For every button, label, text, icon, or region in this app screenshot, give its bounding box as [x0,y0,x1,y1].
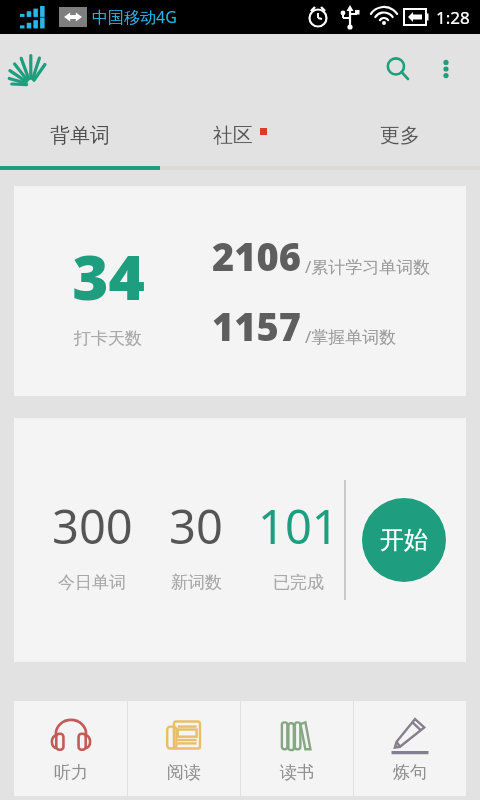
button[interactable]: 阅读 [128,701,240,796]
staticText: 读书 [280,762,314,783]
button[interactable]: 听力 [14,701,127,796]
button[interactable]: 炼句 [354,701,466,796]
staticText: 34 [72,234,145,318]
staticText: 30 [169,494,223,558]
staticText: 已完成 [273,572,324,593]
staticText: 开始 [380,525,428,555]
staticText: 1157 [212,300,302,352]
staticText: 300 [52,494,133,558]
staticText: 听力 [54,762,88,783]
staticText: 101 [258,494,339,558]
button[interactable]: Search [374,45,422,93]
staticText: 更多 [380,123,420,148]
staticText: 打卡天数 [74,328,142,349]
staticText: 今日单词 [58,572,126,593]
staticText: 中国移动4G [92,6,177,28]
button[interactable]: 背单词 [0,104,160,166]
staticText: 1:28 [436,6,470,29]
button[interactable]: More options [422,45,470,93]
staticText: 新词数 [171,572,222,593]
staticText: 阅读 [167,762,201,783]
button[interactable]: 读书 [241,701,353,796]
staticText: /掌握单词数 [305,325,397,348]
staticText: /累计学习单词数 [305,255,431,278]
button[interactable]: 34 [14,186,466,396]
button[interactable]: 开始 [362,498,446,582]
button[interactable]: Logo [14,41,70,97]
staticText: 2106 [212,230,302,282]
staticText: 社区 [213,123,253,148]
staticText: 背单词 [50,123,110,148]
button[interactable]: 更多 [320,104,480,166]
staticText: 炼句 [393,762,427,783]
button[interactable]: 社区 [160,104,320,166]
